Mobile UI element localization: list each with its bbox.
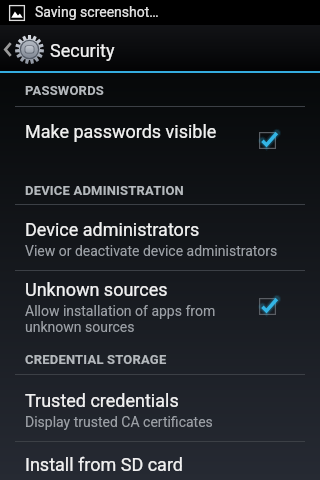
button[interactable] (0, 205, 320, 270)
staticText: Trusted credentials (25, 390, 179, 411)
staticText: Device administrators (25, 219, 200, 240)
staticText: View or deactivate device administrators (25, 243, 278, 259)
staticText: Display trusted CA certificates (25, 414, 213, 430)
staticText: Allow installation of apps from unknown … (25, 303, 216, 335)
staticText: Install from SD card (25, 454, 183, 475)
button[interactable]: Navigate up (0, 25, 320, 71)
staticText: Unknown sources (25, 279, 168, 300)
staticText: Make passwords visible (25, 121, 217, 142)
button[interactable] (0, 375, 320, 441)
staticText: Saving screenshot… (35, 4, 159, 20)
staticText: DEVICE ADMINISTRATION (25, 183, 184, 198)
staticText: Security (50, 40, 115, 61)
staticText: CREDENTIAL STORAGE (25, 352, 167, 367)
staticText: PASSWORDS (25, 83, 104, 98)
button[interactable] (0, 442, 320, 480)
button[interactable] (0, 107, 320, 176)
button[interactable] (0, 271, 320, 342)
